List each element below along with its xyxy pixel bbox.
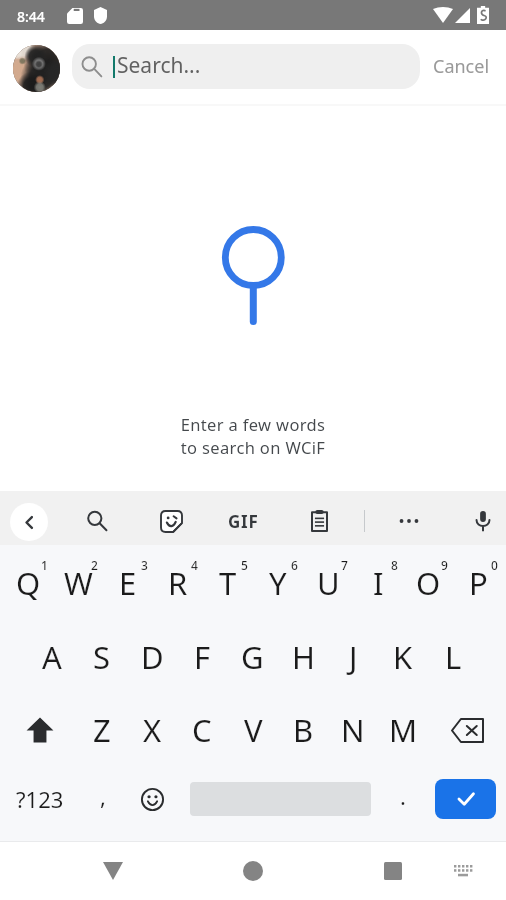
button[interactable]: Emoji — [129, 763, 175, 835]
staticText: 7 — [341, 557, 348, 573]
button[interactable]: K — [378, 621, 428, 693]
staticText: B — [293, 709, 314, 751]
staticText: P — [469, 562, 488, 604]
button[interactable]: F — [177, 621, 227, 693]
button[interactable]: N — [328, 694, 378, 766]
button[interactable]: Backspace — [435, 694, 499, 766]
staticText: A — [42, 636, 62, 678]
staticText: S — [93, 636, 111, 678]
button[interactable]: Search — [77, 501, 117, 541]
button[interactable]: U — [303, 549, 353, 621]
staticText: G — [241, 636, 264, 678]
button[interactable]: J — [328, 621, 378, 693]
button[interactable]: H — [278, 621, 328, 693]
staticText: GIF — [228, 510, 259, 533]
staticText: 8 — [391, 557, 398, 573]
staticText: O — [416, 562, 441, 604]
button[interactable]: Y — [253, 549, 303, 621]
button[interactable]: A — [27, 621, 77, 693]
button[interactable]: Voice input — [463, 501, 503, 541]
staticText: 4 — [191, 557, 198, 573]
button[interactable]: D — [127, 621, 177, 693]
staticText: J — [349, 636, 358, 678]
staticText: V — [244, 709, 263, 751]
staticText: 9 — [441, 557, 448, 573]
button[interactable]: S — [77, 621, 127, 693]
staticText: , — [100, 781, 106, 811]
staticText: Search... — [117, 51, 201, 80]
button[interactable]: E — [103, 549, 153, 621]
button[interactable]: Search... — [72, 44, 420, 89]
button[interactable]: B — [278, 694, 328, 766]
button[interactable]: GIF — [223, 501, 263, 541]
button[interactable]: M — [378, 694, 428, 766]
button[interactable]: Shift — [8, 694, 72, 766]
button[interactable]: Cancel — [428, 49, 495, 84]
staticText: 1 — [41, 557, 48, 573]
button[interactable]: G — [227, 621, 277, 693]
button[interactable]: More options — [389, 501, 429, 541]
staticText: R — [168, 562, 188, 604]
button[interactable]: W — [53, 549, 103, 621]
button[interactable]: Clipboard — [299, 501, 339, 541]
staticText: L — [445, 636, 462, 678]
staticText: 0 — [491, 557, 498, 573]
button[interactable]: R — [153, 549, 203, 621]
staticText: K — [393, 636, 413, 678]
staticText: C — [192, 709, 212, 751]
staticText: 3 — [141, 557, 148, 573]
staticText: W — [64, 562, 93, 604]
staticText: X — [143, 709, 162, 751]
button[interactable]: Space — [178, 763, 383, 835]
button[interactable]: Back — [10, 503, 48, 541]
staticText: D — [141, 636, 164, 678]
staticText: U — [317, 562, 340, 604]
staticText: N — [341, 709, 365, 751]
button[interactable]: O — [403, 549, 453, 621]
button[interactable]: V — [228, 694, 278, 766]
staticText: T — [219, 562, 237, 604]
staticText: Cancel — [433, 54, 490, 79]
button[interactable]: ?123 — [0, 763, 80, 835]
staticText: 2 — [91, 557, 98, 573]
staticText: 5 — [241, 557, 248, 573]
staticText: M — [389, 709, 418, 751]
staticText: Z — [93, 709, 111, 751]
button[interactable]: Switch keyboard — [443, 841, 483, 900]
staticText: E — [119, 562, 137, 604]
button[interactable]: Profile — [13, 45, 60, 92]
button[interactable]: L — [428, 621, 478, 693]
button[interactable]: Z — [77, 694, 127, 766]
button[interactable]: P — [453, 549, 503, 621]
button[interactable]: . — [386, 763, 420, 835]
button[interactable]: X — [127, 694, 177, 766]
button[interactable]: Q — [3, 549, 53, 621]
staticText: . — [400, 781, 406, 811]
staticText: 8:44 — [17, 7, 45, 26]
staticText: I — [373, 562, 384, 604]
staticText: ?123 — [16, 784, 64, 814]
button[interactable]: , — [80, 763, 126, 835]
staticText: Y — [269, 562, 287, 604]
staticText: F — [194, 636, 211, 678]
button[interactable]: Stickers — [151, 501, 191, 541]
button[interactable]: T — [203, 549, 253, 621]
button[interactable]: Recent apps — [368, 841, 418, 900]
staticText: H — [292, 636, 315, 678]
staticText: 6 — [291, 557, 298, 573]
button[interactable]: Back — [88, 841, 138, 900]
button[interactable]: I — [353, 549, 403, 621]
button[interactable]: Enter — [424, 763, 506, 835]
staticText: Q — [16, 562, 41, 604]
button[interactable]: C — [177, 694, 227, 766]
button[interactable]: Home — [228, 841, 278, 900]
staticText: Enter a few words to search on WCiF — [0, 413, 506, 459]
